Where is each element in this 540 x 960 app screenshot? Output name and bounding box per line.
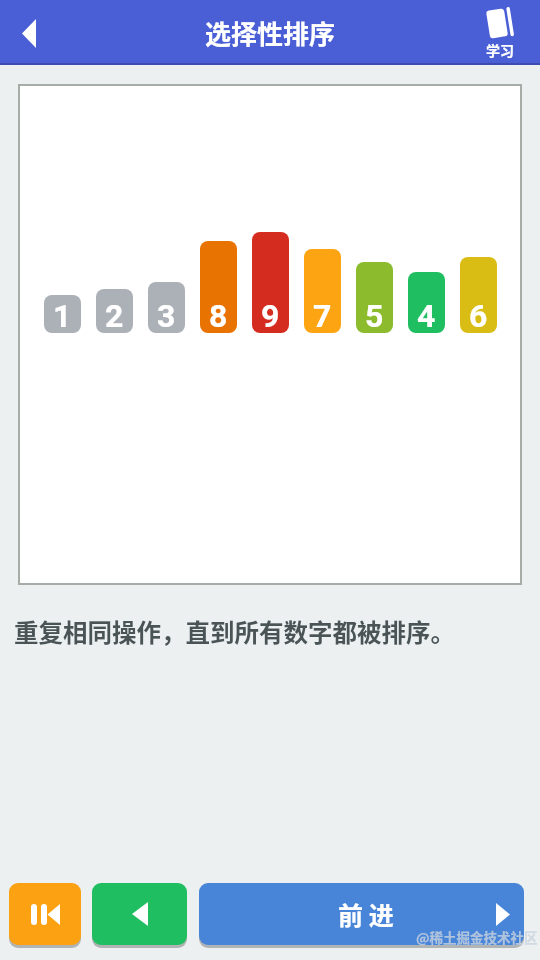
button[interactable]: 学习: [486, 6, 514, 60]
staticText: 重复相同操作，直到所有数字都被排序。: [14, 614, 455, 649]
button[interactable]: [92, 883, 187, 945]
staticText: 6: [469, 297, 488, 333]
staticText: 前 进: [338, 896, 394, 932]
staticText: 1: [53, 297, 72, 333]
staticText: 2: [105, 297, 124, 333]
staticText: 9: [261, 297, 280, 333]
staticText: @稀土掘金技术社区: [416, 927, 538, 947]
button[interactable]: 前 进: [199, 883, 524, 945]
staticText: 选择性排序: [205, 14, 336, 52]
staticText: 学习: [486, 40, 514, 60]
button[interactable]: [9, 883, 81, 945]
staticText: 3: [157, 297, 176, 333]
staticText: 7: [313, 297, 332, 333]
staticText: 8: [209, 297, 228, 333]
button[interactable]: [9, 13, 49, 53]
staticText: 4: [417, 297, 436, 333]
staticText: 5: [365, 297, 384, 333]
